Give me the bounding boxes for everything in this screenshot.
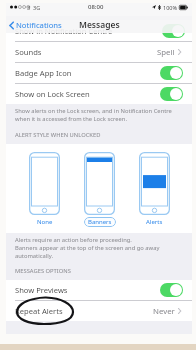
- staticText: ALERT STYLE WHEN UNLOCKED: [15, 131, 101, 139]
- staticText: Show in Notification Centre: [15, 26, 113, 36]
- staticText: None: [37, 218, 53, 226]
- button[interactable]: Show Previews: [6, 280, 192, 300]
- staticText: Sounds: [15, 47, 42, 57]
- button[interactable]: Repeat Alerts: [6, 301, 192, 321]
- staticText: Show Previews: [15, 285, 68, 295]
- staticText: Badge App Icon: [15, 68, 72, 78]
- button[interactable]: Toggle: [160, 66, 183, 80]
- staticText: 3: [27, 4, 31, 11]
- staticText: Show on Lock Screen: [15, 89, 90, 99]
- staticText: Never: [153, 306, 175, 317]
- button[interactable]: Toggle: [162, 24, 185, 38]
- staticText: Banners: [88, 218, 112, 226]
- staticText: 08:00: [88, 3, 104, 11]
- staticText: MESSAGES OPTIONS: [15, 267, 71, 275]
- staticText: Alerts require an action before proceedi…: [15, 236, 160, 260]
- staticText: Messages: [79, 19, 120, 31]
- staticText: Alerts: [146, 218, 163, 226]
- staticText: Spell: [157, 47, 175, 58]
- staticText: Notifications: [16, 20, 62, 30]
- staticText: 3G: [33, 4, 41, 11]
- staticText: Show alerts on the Lock screen, and in N…: [15, 107, 172, 123]
- button[interactable]: Notifications: [6, 17, 65, 33]
- staticText: 100%: [163, 4, 178, 11]
- button[interactable]: Toggle: [160, 87, 183, 101]
- button[interactable]: Toggle: [160, 283, 183, 297]
- button[interactable]: Sounds: [6, 42, 192, 62]
- staticText: Repeat Alerts: [15, 306, 63, 316]
- button[interactable]: Alerts: [134, 152, 175, 227]
- button[interactable]: None: [24, 152, 65, 227]
- button[interactable]: Banners: [79, 152, 120, 227]
- button[interactable]: Show on Lock Screen: [6, 84, 192, 104]
- button[interactable]: Badge App Icon: [6, 63, 192, 83]
